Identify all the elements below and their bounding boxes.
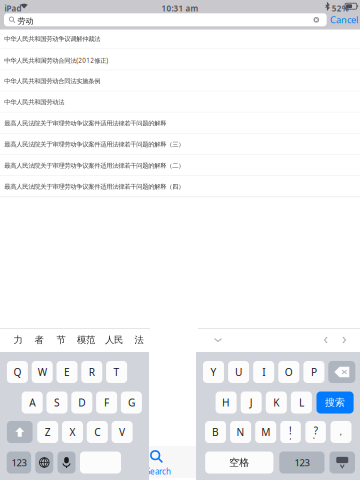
staticText: P (311, 365, 317, 379)
button[interactable]: G (121, 391, 142, 413)
button[interactable]: Q (7, 361, 28, 383)
button[interactable]: 节 (50, 328, 72, 352)
button[interactable]: Hide keyboard (329, 451, 355, 473)
staticText: iPad (4, 3, 21, 14)
button[interactable]: 搜索 (316, 391, 354, 413)
button[interactable]: Cancel (330, 13, 360, 26)
button[interactable]: 最高人民法院关于审理劳动争议案件适用法律若干问题的解释（二） (0, 155, 360, 176)
staticText: , (290, 431, 292, 441)
button[interactable]: I (253, 361, 274, 383)
button[interactable]: Y (203, 361, 224, 383)
staticText: ? (314, 424, 318, 437)
button[interactable]: 123 (7, 451, 31, 473)
staticText: M (261, 425, 270, 439)
button[interactable]: O (278, 361, 299, 383)
staticText: O (285, 365, 293, 379)
button[interactable]: C (87, 421, 108, 443)
staticText: 力 (13, 334, 22, 346)
button[interactable]: Shift (7, 421, 33, 443)
staticText: A (29, 396, 35, 409)
staticText: W (38, 365, 47, 379)
button[interactable]: 法 (128, 328, 150, 352)
staticText: 劳动 (17, 16, 33, 26)
button[interactable]: Search (0, 446, 360, 478)
button[interactable]: 中华人民共和国劳动法 (0, 91, 360, 112)
button[interactable]: V (112, 421, 133, 443)
button[interactable]: 最高人民法院关于审理劳动争议案件适用法律若干问题的解释（四） (0, 176, 360, 197)
staticText: 中华人民共和国劳动法 (4, 98, 64, 106)
button[interactable]: 中华人民共和国劳动合同法实施条例 (0, 70, 360, 91)
button[interactable]: ? (305, 421, 326, 443)
button[interactable]: P (303, 361, 324, 383)
staticText: S (54, 396, 60, 409)
button[interactable]: K (266, 391, 287, 413)
staticText: J (250, 396, 253, 409)
staticText: Z (45, 425, 51, 439)
staticText: 中华人民共和国劳动合同法实施条例 (4, 77, 100, 85)
button[interactable]: S (46, 391, 67, 413)
button[interactable]: 模范 (72, 328, 100, 352)
staticText: Search (146, 466, 171, 477)
button[interactable]: W (32, 361, 53, 383)
staticText: 者 (34, 334, 43, 346)
button[interactable]: 者 (28, 328, 50, 352)
staticText: T (114, 365, 120, 379)
button[interactable] (80, 451, 121, 473)
staticText: K (273, 396, 279, 409)
staticText: E (64, 365, 70, 379)
staticText: 模范 (77, 334, 95, 346)
button[interactable]: L (291, 391, 312, 413)
button[interactable]: J (241, 391, 262, 413)
button[interactable]: B (205, 421, 226, 443)
staticText: 。 (312, 431, 319, 440)
staticText: 52% (332, 3, 349, 14)
staticText: 空格 (229, 456, 249, 469)
button[interactable]: 最高人民法院关于审理劳动争议案件适用法律若干问题的解释 (0, 112, 360, 134)
button[interactable]: Dictation (57, 451, 75, 473)
staticText: 人民 (105, 334, 123, 346)
button[interactable]: Expand candidates (208, 328, 228, 352)
staticText: 123 (294, 456, 309, 469)
button[interactable]: E (56, 361, 77, 383)
staticText: ! (289, 424, 292, 437)
button[interactable]: 人民 (100, 328, 128, 352)
staticText: ， (336, 427, 345, 437)
button[interactable]: 力 (8, 328, 28, 352)
staticText: 10:31 am (161, 3, 198, 14)
button[interactable]: A (22, 391, 43, 413)
staticText: 123 (11, 456, 26, 469)
button[interactable]: T (106, 361, 127, 383)
button[interactable]: F (96, 391, 117, 413)
button[interactable]: 中华人民共和国劳动争议调解仲裁法 (0, 28, 360, 49)
button[interactable]: Delete (328, 361, 355, 383)
button[interactable]: Clear search (310, 13, 323, 26)
button[interactable]: Next candidates (336, 328, 352, 352)
staticText: X (69, 425, 75, 439)
staticText: C (94, 425, 100, 439)
button[interactable]: Next keyboard (35, 451, 53, 473)
button[interactable]: ， (330, 421, 351, 443)
button[interactable]: ! (280, 421, 301, 443)
staticText: Q (13, 365, 21, 379)
button[interactable]: M (255, 421, 276, 443)
staticText: H (222, 396, 230, 409)
staticText: V (119, 425, 125, 439)
button[interactable]: Previous candidates (318, 328, 334, 352)
staticText: F (104, 396, 109, 409)
staticText: B (212, 425, 219, 439)
button[interactable]: R (81, 361, 102, 383)
button[interactable]: U (228, 361, 249, 383)
button[interactable]: X (62, 421, 83, 443)
staticText: 中华人民共和国劳动合同法(2012修正) (4, 56, 108, 65)
staticText: I (262, 365, 265, 379)
button[interactable]: H (216, 391, 237, 413)
button[interactable]: 中华人民共和国劳动合同法(2012修正) (0, 49, 360, 70)
button[interactable]: N (230, 421, 251, 443)
staticText: 中华人民共和国劳动争议调解仲裁法 (4, 35, 100, 43)
button[interactable]: D (71, 391, 92, 413)
button[interactable]: Z (37, 421, 58, 443)
button[interactable]: 空格 (205, 451, 273, 473)
button[interactable]: 123 (279, 451, 324, 473)
button[interactable]: 最高人民法院关于审理劳动争议案件适用法律若干问题的解释（三） (0, 133, 360, 155)
staticText: 最高人民法院关于审理劳动争议案件适用法律若干问题的解释（四） (4, 183, 184, 191)
